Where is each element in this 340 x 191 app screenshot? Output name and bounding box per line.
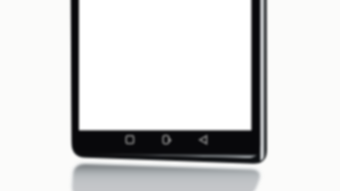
button[interactable]: Smartphone with blank screen [0, 0, 340, 191]
